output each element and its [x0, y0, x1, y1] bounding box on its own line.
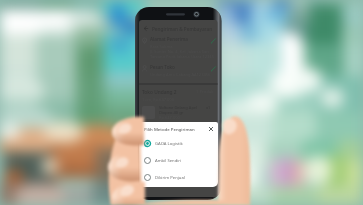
button[interactable]: Back	[142, 25, 149, 32]
button[interactable]: Close	[207, 125, 214, 132]
staticText: Toko Undang 2	[142, 89, 177, 96]
staticText: GAOA Logistik	[155, 141, 183, 147]
staticText: Pengiriman & Pembayaran	[152, 26, 213, 32]
button[interactable]: GAOA Logistik	[144, 135, 218, 152]
button[interactable]: Dikirim Penjual	[144, 169, 218, 186]
staticText: Dikirim Penjual	[155, 175, 185, 181]
staticText: Pilih Metode Pengiriman	[144, 126, 195, 132]
button[interactable]: Back	[142, 24, 214, 33]
button[interactable]: Ambil Sendiri	[144, 152, 218, 169]
staticText: Alamat Penerima	[150, 36, 188, 42]
button[interactable]: Voltone Gelang Apel	[142, 105, 214, 121]
staticText: Pesan Toko	[150, 64, 175, 70]
staticText: Ambil Sendiri	[155, 158, 182, 164]
